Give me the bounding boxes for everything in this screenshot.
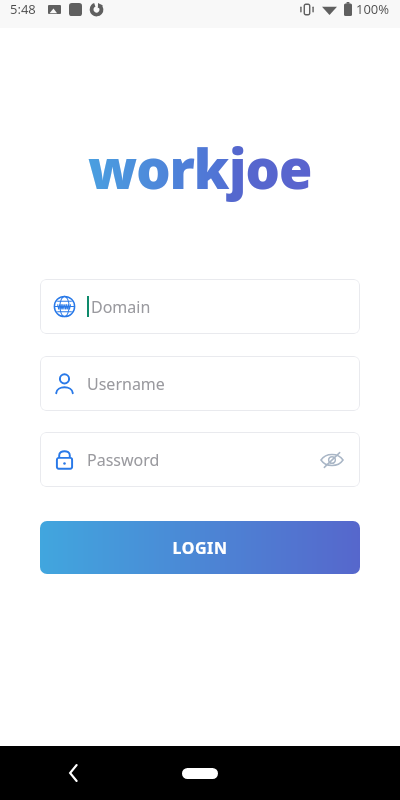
staticText: Username [87,373,165,395]
staticText: joe [229,131,312,205]
staticText: Password [87,449,160,471]
button[interactable]: Username [40,356,360,411]
button[interactable]: Show password [317,445,347,475]
button[interactable]: Password [40,432,360,487]
button[interactable]: Home [172,760,228,786]
staticText: Domain [91,296,151,318]
button[interactable]: LOGIN [40,521,360,574]
staticText: work [88,131,229,205]
button[interactable]: Domain [40,279,360,334]
staticText: 5:48 [10,0,36,18]
staticText: 100% [356,0,390,18]
button[interactable]: Back [58,758,88,788]
staticText: LOGIN [172,537,228,559]
